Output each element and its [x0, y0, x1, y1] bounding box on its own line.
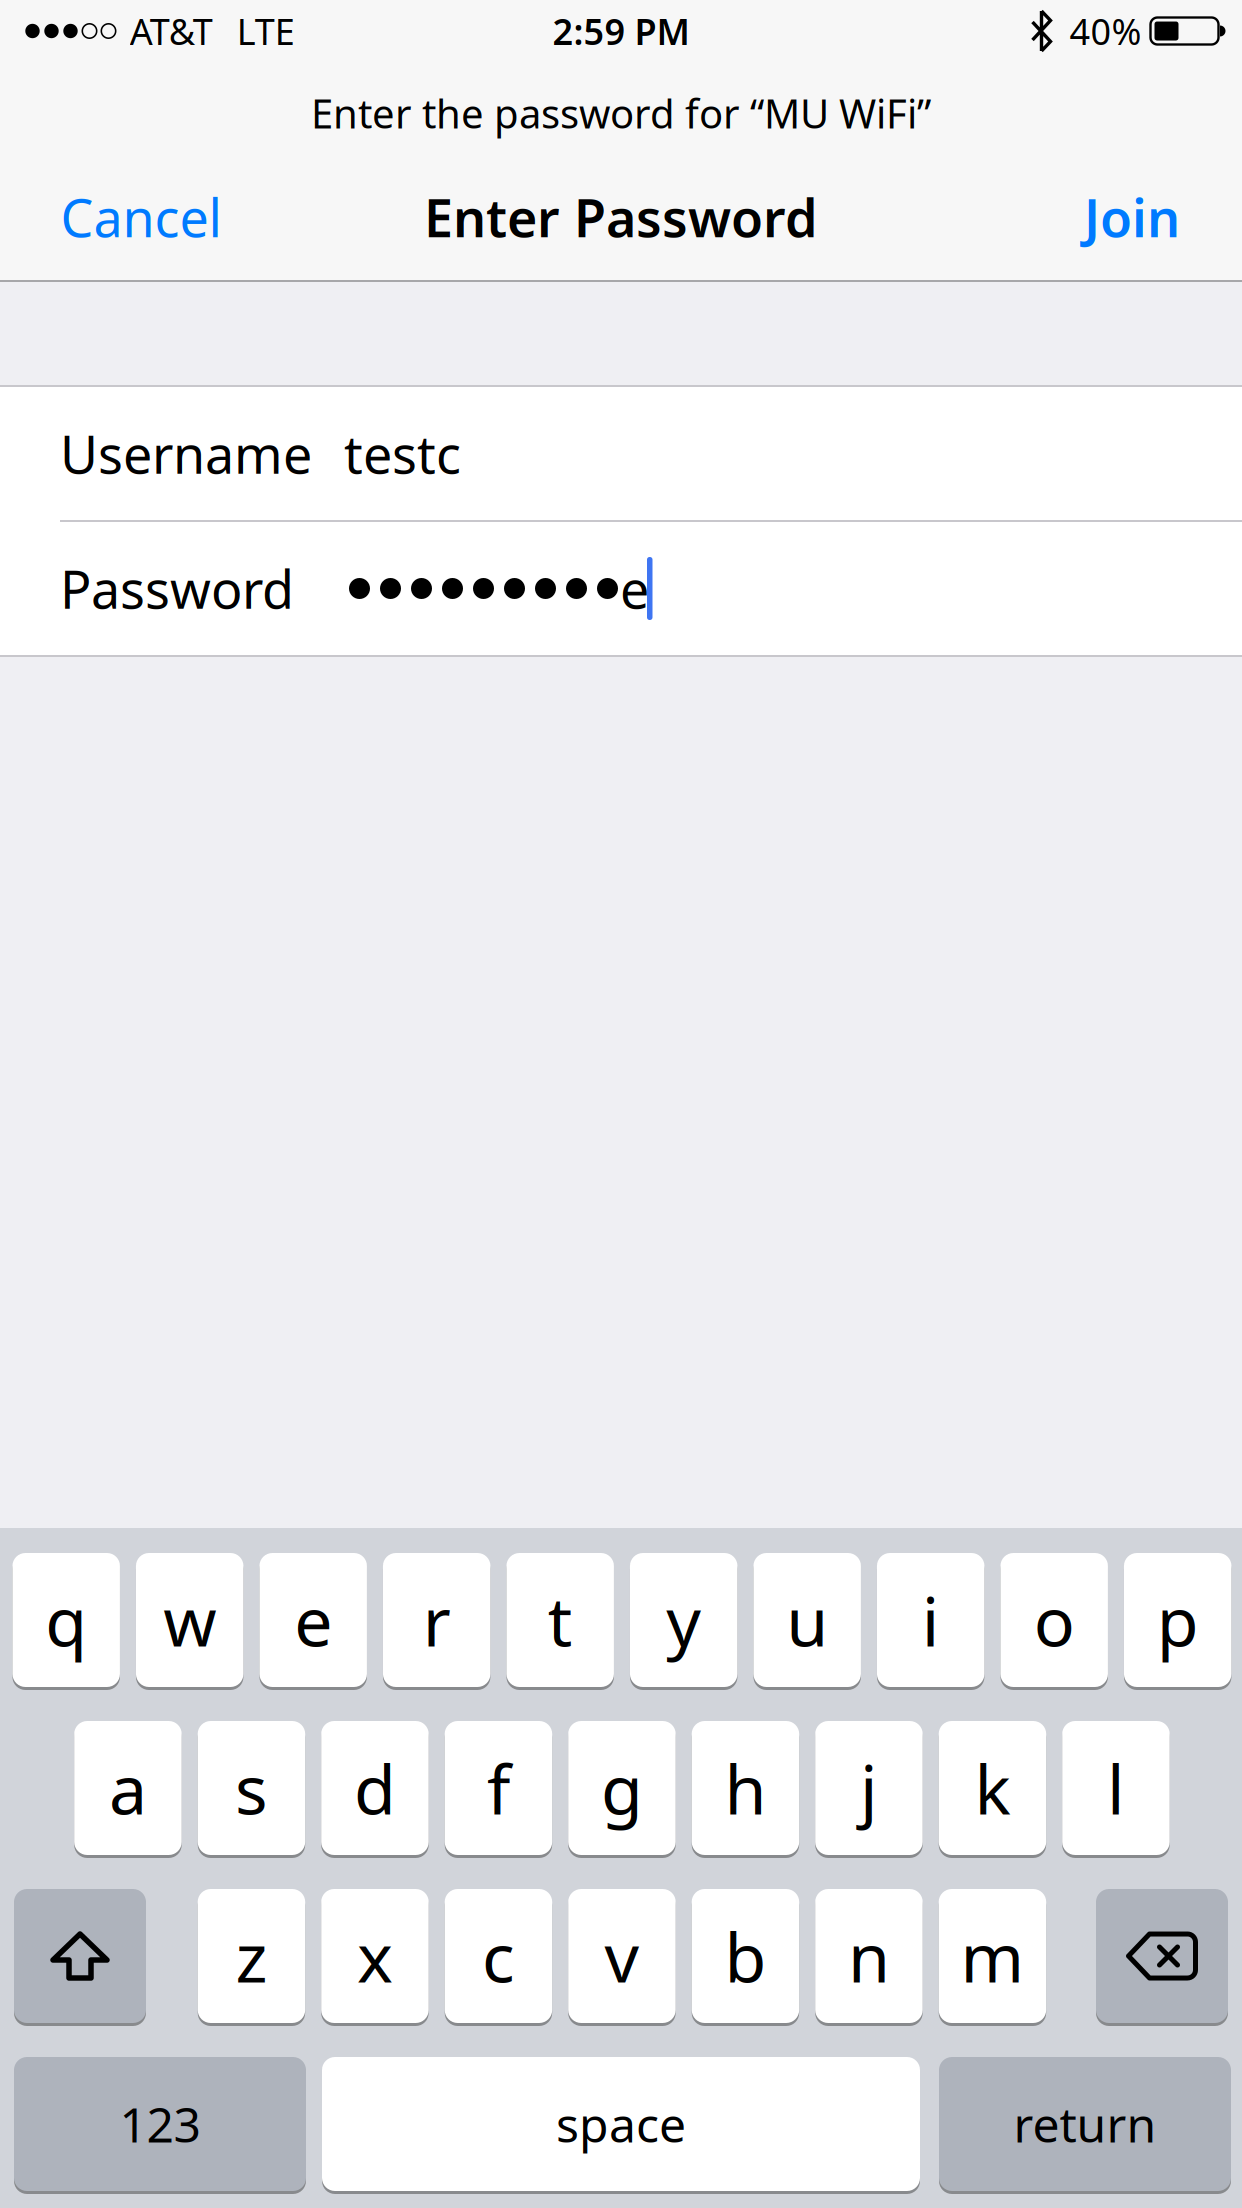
staticText: g [601, 1743, 643, 1833]
staticText: f [487, 1743, 510, 1833]
staticText: r [423, 1575, 451, 1665]
button[interactable]: x [321, 1889, 429, 2023]
staticText: j [860, 1743, 878, 1833]
staticText: z [235, 1911, 267, 2001]
button[interactable]: g [568, 1721, 676, 1855]
staticText: m [960, 1911, 1024, 2001]
button[interactable]: a [74, 1721, 182, 1855]
staticText: e [620, 554, 649, 623]
staticText: d [354, 1743, 396, 1833]
staticText: w [163, 1575, 216, 1665]
button[interactable]: r [383, 1553, 490, 1687]
button[interactable]: t [506, 1553, 614, 1687]
staticText: q [45, 1575, 87, 1665]
staticText: Join [1084, 182, 1180, 252]
staticText: 2:59 PM [552, 7, 689, 55]
staticText: 40% [1069, 7, 1141, 55]
button[interactable]: e [259, 1553, 367, 1687]
staticText: a [109, 1743, 147, 1833]
staticText: n [848, 1911, 890, 2001]
staticText: y [666, 1575, 701, 1665]
button[interactable]: space [322, 2057, 920, 2191]
button[interactable]: Delete [1096, 1889, 1228, 2023]
button[interactable]: z [198, 1889, 305, 2023]
staticText: s [235, 1743, 268, 1833]
button[interactable]: Password [0, 522, 1242, 655]
staticText: b [724, 1911, 766, 2001]
button[interactable]: Cancel [60, 182, 221, 252]
button[interactable]: c [445, 1889, 552, 2023]
staticText: c [482, 1911, 515, 2001]
button[interactable]: return [939, 2057, 1231, 2191]
staticText: x [357, 1911, 393, 2001]
button[interactable]: b [692, 1889, 799, 2023]
button[interactable]: m [939, 1889, 1046, 2023]
staticText: Cancel [60, 182, 221, 252]
staticText: Username [60, 419, 312, 488]
button[interactable]: s [198, 1721, 305, 1855]
button[interactable]: Username [0, 387, 1242, 520]
staticText: Enter the password for “MU WiFi” [311, 86, 931, 139]
button[interactable]: d [321, 1721, 429, 1855]
button[interactable]: p [1124, 1553, 1231, 1687]
button[interactable]: j [815, 1721, 923, 1855]
staticText: i [922, 1575, 940, 1665]
button[interactable]: u [753, 1553, 861, 1687]
button[interactable]: Shift [14, 1889, 146, 2023]
staticText: 123 [119, 2092, 200, 2156]
staticText: p [1157, 1575, 1199, 1665]
button[interactable]: y [630, 1553, 737, 1687]
button[interactable]: o [1000, 1553, 1108, 1687]
staticText: LTE [237, 7, 295, 55]
staticText: k [974, 1743, 1010, 1833]
button[interactable]: k [939, 1721, 1046, 1855]
staticText: e [294, 1575, 332, 1665]
staticText: v [604, 1911, 639, 2001]
staticText: u [786, 1575, 828, 1665]
staticText: AT&T [130, 7, 213, 55]
button[interactable]: q [12, 1553, 120, 1687]
button[interactable]: Join [1084, 182, 1180, 252]
button[interactable]: l [1062, 1721, 1170, 1855]
button[interactable]: h [692, 1721, 799, 1855]
staticText: testc [344, 419, 461, 488]
staticText: Password [60, 554, 294, 623]
staticText: o [1034, 1575, 1075, 1665]
button[interactable]: 123 [14, 2057, 306, 2191]
staticText: l [1107, 1743, 1125, 1833]
button[interactable]: v [568, 1889, 676, 2023]
button[interactable]: n [815, 1889, 923, 2023]
staticText: t [548, 1575, 573, 1665]
staticText: space [556, 2092, 686, 2156]
staticText: h [724, 1743, 766, 1833]
button[interactable]: f [445, 1721, 552, 1855]
staticText: Enter Password [424, 182, 818, 252]
button[interactable]: i [877, 1553, 984, 1687]
staticText: return [1013, 2092, 1156, 2156]
button[interactable]: w [136, 1553, 243, 1687]
